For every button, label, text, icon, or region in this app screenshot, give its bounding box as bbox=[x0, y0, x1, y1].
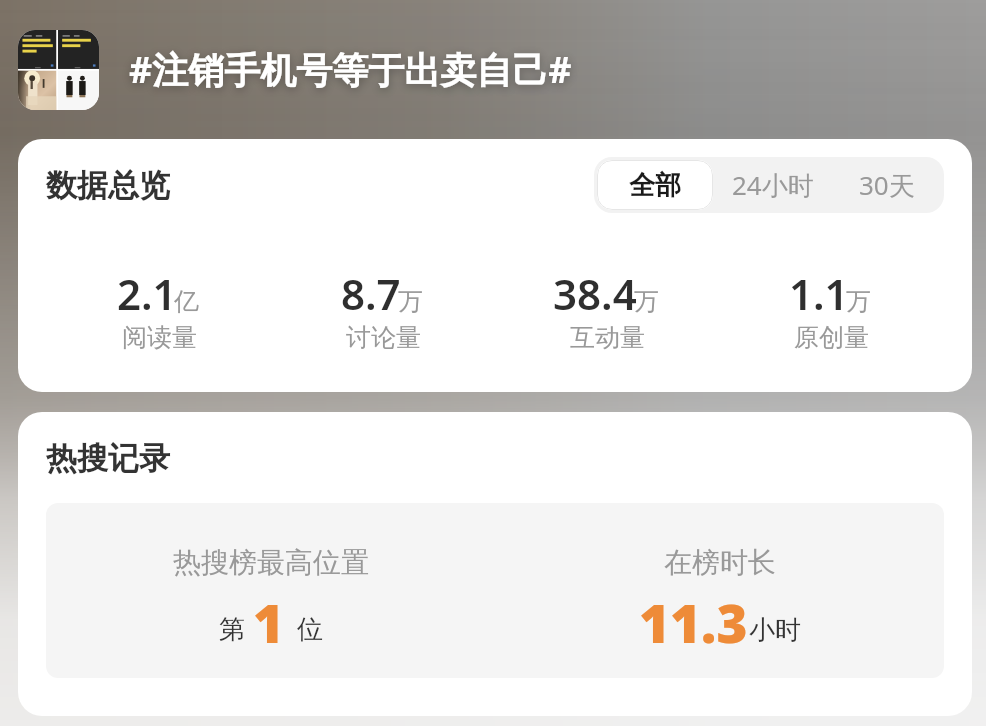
button[interactable]: 38.4 bbox=[495, 258, 719, 353]
staticText: 万 bbox=[398, 286, 423, 317]
staticText: 热搜记录 bbox=[46, 439, 170, 478]
button[interactable]: 话题封面 bbox=[18, 30, 99, 110]
staticText: 原创量 bbox=[794, 322, 869, 353]
staticText: 热搜榜最高位置 bbox=[173, 545, 369, 580]
staticText: 讨论量 bbox=[346, 322, 421, 353]
staticText: 位 bbox=[297, 613, 323, 646]
staticText: 数据总览 bbox=[46, 166, 170, 205]
staticText: 11.3 bbox=[639, 586, 748, 658]
staticText: 互动量 bbox=[570, 322, 645, 353]
staticText: 30天 bbox=[859, 167, 915, 203]
staticText: 8.7 bbox=[341, 265, 401, 322]
staticText: 阅读量 bbox=[122, 322, 197, 353]
staticText: #注销手机号等于出卖自己# bbox=[129, 45, 572, 94]
staticText: 第 bbox=[219, 613, 245, 646]
button[interactable]: 话题封面 bbox=[0, 0, 986, 139]
staticText: 1.1 bbox=[789, 265, 849, 322]
button[interactable]: 2.1 bbox=[47, 258, 271, 353]
button[interactable]: 24小时 bbox=[716, 157, 830, 213]
staticText: 在榜时长 bbox=[664, 545, 776, 580]
staticText: 24小时 bbox=[732, 167, 814, 203]
staticText: 1 bbox=[253, 586, 285, 658]
button[interactable]: 30天 bbox=[830, 157, 944, 213]
button[interactable]: 全部 bbox=[597, 160, 713, 210]
staticText: 亿 bbox=[174, 286, 199, 317]
staticText: 全部 bbox=[629, 169, 681, 202]
button[interactable]: 8.7 bbox=[271, 258, 495, 353]
button[interactable]: 1.1 bbox=[719, 258, 943, 353]
staticText: 万 bbox=[846, 286, 871, 317]
staticText: 38.4 bbox=[553, 265, 637, 322]
staticText: 万 bbox=[634, 286, 659, 317]
staticText: 2.1 bbox=[117, 265, 177, 322]
staticText: 小时 bbox=[749, 614, 801, 647]
